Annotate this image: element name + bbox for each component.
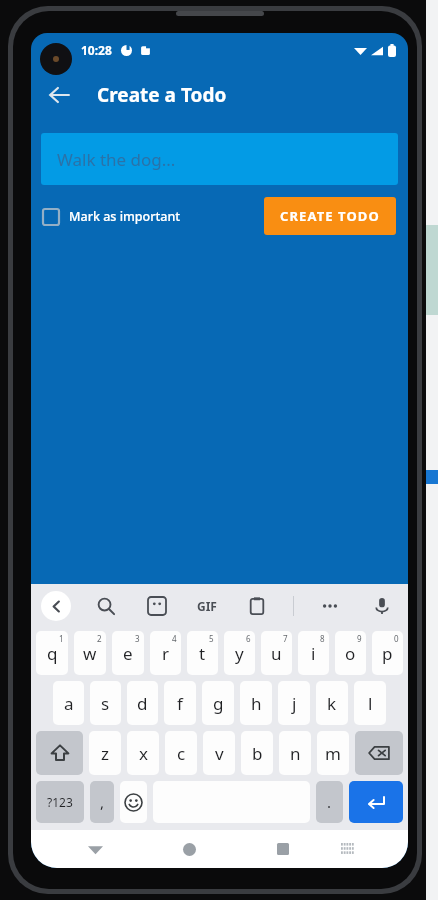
- staticText: 10:28: [81, 42, 112, 58]
- button[interactable]: v: [203, 731, 235, 775]
- button[interactable]: c: [165, 731, 197, 775]
- staticText: 7: [283, 633, 288, 644]
- staticText: j: [292, 692, 297, 715]
- button[interactable]: More options: [314, 590, 346, 622]
- staticText: 4: [172, 633, 177, 644]
- staticText: r: [162, 642, 170, 665]
- button[interactable]: Hide keyboard: [332, 834, 362, 864]
- staticText: q: [47, 642, 58, 665]
- button[interactable]: k: [316, 681, 348, 725]
- staticText: l: [368, 692, 373, 715]
- button[interactable]: CREATE TODO: [264, 197, 396, 235]
- button[interactable]: s: [90, 681, 121, 725]
- button[interactable]: b: [241, 731, 273, 775]
- staticText: g: [213, 692, 224, 715]
- button[interactable]: n: [279, 731, 311, 775]
- button[interactable]: t: [187, 631, 218, 675]
- button[interactable]: f: [164, 681, 196, 725]
- staticText: a: [64, 692, 74, 715]
- staticText: GIF: [197, 598, 217, 614]
- button[interactable]: e: [112, 631, 144, 675]
- staticText: z: [101, 742, 109, 765]
- button[interactable]: Backspace: [355, 731, 403, 775]
- staticText: x: [139, 742, 148, 765]
- staticText: k: [327, 692, 337, 715]
- staticText: Create a Todo: [97, 82, 227, 108]
- button[interactable]: Voice input: [366, 590, 398, 622]
- button[interactable]: Recents: [266, 832, 300, 866]
- button[interactable]: ,: [90, 781, 114, 823]
- staticText: 9: [357, 633, 362, 644]
- staticText: 2: [97, 633, 102, 644]
- button[interactable]: Mark as important: [43, 204, 181, 229]
- staticText: e: [123, 642, 133, 665]
- button[interactable]: Home: [172, 832, 206, 866]
- button[interactable]: Back: [37, 73, 81, 117]
- staticText: 3: [135, 633, 140, 644]
- staticText: v: [215, 742, 224, 765]
- button[interactable]: Stickers: [141, 590, 173, 622]
- button[interactable]: .: [316, 781, 343, 823]
- button[interactable]: r: [150, 631, 181, 675]
- staticText: .: [327, 792, 332, 812]
- staticText: h: [251, 692, 262, 715]
- button[interactable]: j: [278, 681, 310, 725]
- staticText: s: [101, 692, 110, 715]
- button[interactable]: y: [224, 631, 255, 675]
- button[interactable]: Clipboard: [241, 590, 273, 622]
- button[interactable]: g: [202, 681, 234, 725]
- staticText: Mark as important: [69, 208, 181, 225]
- button[interactable]: p: [372, 631, 403, 675]
- staticText: 0: [394, 633, 399, 644]
- button[interactable]: Enter: [349, 781, 403, 823]
- button[interactable]: l: [354, 681, 386, 725]
- staticText: b: [252, 742, 263, 765]
- staticText: y: [235, 642, 244, 665]
- staticText: n: [290, 742, 301, 765]
- button[interactable]: a: [53, 681, 84, 725]
- staticText: t: [199, 642, 206, 665]
- staticText: m: [325, 742, 341, 765]
- button[interactable]: w: [74, 631, 106, 675]
- staticText: Walk the dog...: [57, 148, 176, 171]
- button[interactable]: Walk the dog...: [41, 133, 398, 185]
- button[interactable]: Shift: [36, 731, 83, 775]
- button[interactable]: o: [335, 631, 366, 675]
- button[interactable]: GIF: [193, 594, 221, 618]
- button[interactable]: d: [127, 681, 158, 725]
- staticText: CREATE TODO: [280, 207, 380, 225]
- staticText: p: [382, 642, 393, 665]
- staticText: c: [177, 742, 186, 765]
- staticText: i: [311, 642, 316, 665]
- staticText: 5: [209, 633, 214, 644]
- staticText: u: [271, 642, 282, 665]
- button[interactable]: x: [127, 731, 159, 775]
- staticText: 6: [246, 633, 251, 644]
- staticText: w: [83, 642, 97, 665]
- button[interactable]: Back: [78, 832, 112, 866]
- staticText: ,: [100, 792, 105, 812]
- button[interactable]: h: [240, 681, 272, 725]
- button[interactable]: ?123: [36, 781, 84, 823]
- button[interactable]: Expand: [41, 591, 71, 621]
- button[interactable]: Search: [90, 590, 122, 622]
- staticText: d: [137, 692, 148, 715]
- button[interactable]: z: [89, 731, 121, 775]
- staticText: f: [177, 692, 183, 715]
- staticText: 8: [320, 633, 325, 644]
- button[interactable]: m: [317, 731, 349, 775]
- button[interactable]: i: [298, 631, 329, 675]
- button[interactable]: u: [261, 631, 292, 675]
- staticText: ?123: [47, 794, 73, 810]
- staticText: 1: [59, 633, 64, 644]
- button[interactable]: q: [36, 631, 68, 675]
- button[interactable]: Emoji: [120, 781, 147, 823]
- staticText: o: [345, 642, 356, 665]
